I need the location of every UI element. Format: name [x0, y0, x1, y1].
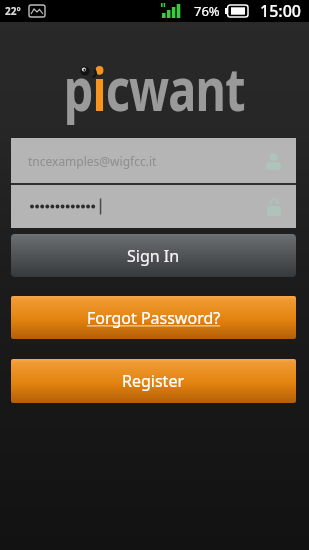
button[interactable]: Forgot Password?: [11, 296, 296, 339]
button[interactable]: tncexamples@wigfcc.it: [11, 138, 296, 183]
button[interactable]: Register: [11, 359, 296, 403]
staticText: Register: [122, 370, 185, 392]
staticText: Forgot Password?: [87, 307, 221, 329]
staticText: picwant: [64, 47, 245, 129]
staticText: 22°: [5, 4, 21, 18]
staticText: 76%: [194, 2, 220, 20]
button[interactable]: Sign In: [11, 234, 296, 277]
staticText: Sign In: [127, 245, 180, 267]
staticText: 15:00: [260, 0, 301, 22]
button[interactable]: [11, 185, 296, 228]
staticText: tncexamples@wigfcc.it: [28, 153, 157, 169]
